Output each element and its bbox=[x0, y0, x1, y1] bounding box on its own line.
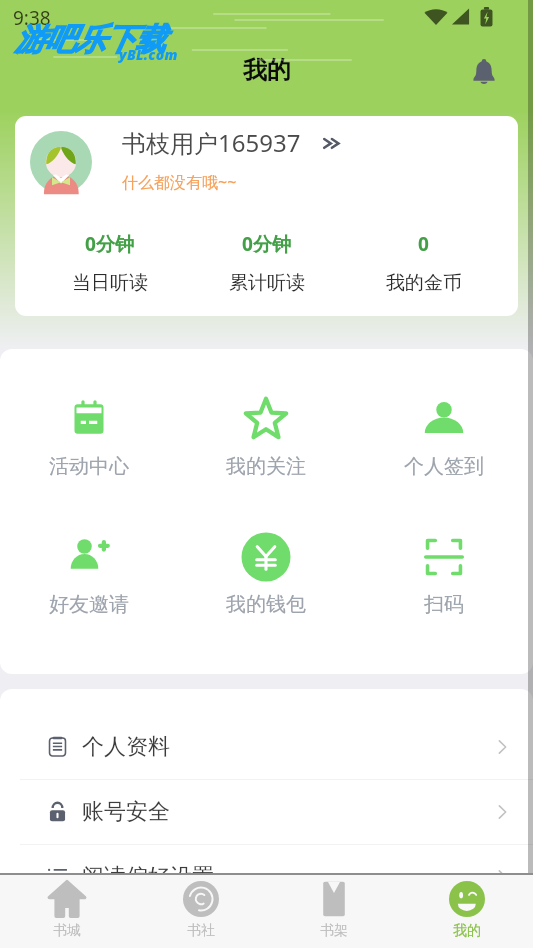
staticText: 0分钟 bbox=[85, 231, 134, 257]
staticText: 我的金币 bbox=[386, 271, 462, 295]
button[interactable]: 个人签到 bbox=[355, 394, 533, 479]
staticText: 0分钟 bbox=[242, 231, 291, 257]
staticText: 我的 bbox=[243, 55, 291, 85]
staticText: 书枝用户165937 bbox=[122, 126, 301, 159]
staticText: 活动中心 bbox=[49, 454, 129, 479]
staticText: 0 bbox=[418, 231, 429, 257]
staticText: 好友邀请 bbox=[49, 592, 129, 617]
staticText: 扫码 bbox=[424, 592, 464, 617]
button[interactable]: 书架 bbox=[267, 875, 400, 940]
button[interactable]: 书枝用户165937 bbox=[15, 116, 518, 316]
staticText: 当日听读 bbox=[72, 271, 148, 295]
button[interactable]: 我的 bbox=[400, 875, 533, 940]
staticText: 阅读偏好设置 bbox=[82, 863, 214, 873]
staticText: 游吧乐下载 bbox=[15, 20, 165, 59]
staticText: 我的关注 bbox=[226, 454, 306, 479]
button[interactable]: 活动中心 bbox=[0, 394, 177, 479]
staticText: 书城 bbox=[53, 922, 81, 940]
button[interactable]: 书城 bbox=[0, 875, 134, 940]
button[interactable]: 账号安全 bbox=[0, 780, 533, 844]
button[interactable]: 个人资料 bbox=[0, 715, 533, 779]
staticText: 累计听读 bbox=[229, 271, 305, 295]
button[interactable]: 扫码 bbox=[355, 532, 533, 617]
staticText: 9:38 bbox=[13, 5, 51, 31]
staticText: yBL.com bbox=[119, 45, 178, 64]
button[interactable]: 好友邀请 bbox=[0, 532, 177, 617]
staticText: 我的钱包 bbox=[226, 592, 306, 617]
button[interactable]: 我的关注 bbox=[177, 394, 355, 479]
staticText: 我的 bbox=[453, 922, 481, 940]
button[interactable]: 书社 bbox=[134, 875, 267, 940]
button[interactable]: 0 bbox=[345, 231, 502, 295]
button[interactable]: 0分钟 bbox=[31, 231, 188, 295]
staticText: 账号安全 bbox=[82, 798, 170, 826]
button[interactable]: 0分钟 bbox=[188, 231, 345, 295]
staticText: 个人签到 bbox=[404, 454, 484, 479]
button[interactable]: 阅读偏好设置 bbox=[0, 845, 533, 873]
staticText: 个人资料 bbox=[82, 733, 170, 761]
staticText: 什么都没有哦~~ bbox=[122, 171, 237, 193]
button[interactable]: 我的钱包 bbox=[177, 532, 355, 617]
button[interactable]: Notifications bbox=[466, 53, 502, 89]
staticText: 书架 bbox=[320, 922, 348, 940]
staticText: 书社 bbox=[187, 922, 215, 940]
